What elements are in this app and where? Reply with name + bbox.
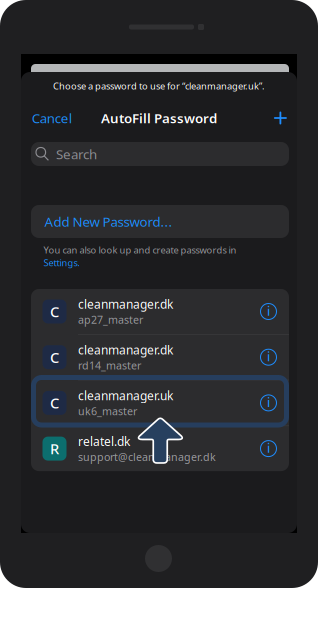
staticText: support@cleanmanager.dk xyxy=(78,450,216,464)
button[interactable]: Add New Password... xyxy=(31,205,289,238)
staticText: C xyxy=(50,393,59,413)
staticText: i xyxy=(267,349,270,365)
staticText: C xyxy=(50,302,59,321)
button[interactable]: R xyxy=(31,426,289,471)
staticText: Search xyxy=(56,145,97,163)
staticText: rd14_master xyxy=(78,358,141,372)
staticText: i xyxy=(267,303,270,319)
staticText: Add New Password... xyxy=(44,213,172,230)
staticText: ap27_master xyxy=(78,313,143,327)
staticText: uk6_master xyxy=(78,404,137,418)
button[interactable]: Cancel xyxy=(32,105,80,131)
button[interactable]: Add New Password xyxy=(267,105,293,131)
staticText: cleanmanager.dk xyxy=(78,342,173,358)
staticText: relatel.dk xyxy=(78,433,130,449)
button[interactable]: Settings. xyxy=(43,256,80,269)
staticText: i xyxy=(267,440,270,456)
staticText: Settings. xyxy=(43,256,80,269)
staticText: R xyxy=(50,439,59,458)
staticText: You can also look up and create password… xyxy=(43,244,236,256)
button[interactable]: C xyxy=(31,380,289,425)
staticText: C xyxy=(50,347,59,367)
button[interactable]: C xyxy=(31,289,289,334)
staticText: i xyxy=(267,394,270,410)
staticText: cleanmanager.dk xyxy=(78,296,173,312)
staticText: AutoFill Password xyxy=(101,109,217,127)
button[interactable]: C xyxy=(31,335,289,380)
staticText: Choose a password to use for “cleanmanag… xyxy=(53,80,265,92)
staticText: Cancel xyxy=(32,109,72,127)
staticText: cleanmanager.uk xyxy=(78,388,173,403)
